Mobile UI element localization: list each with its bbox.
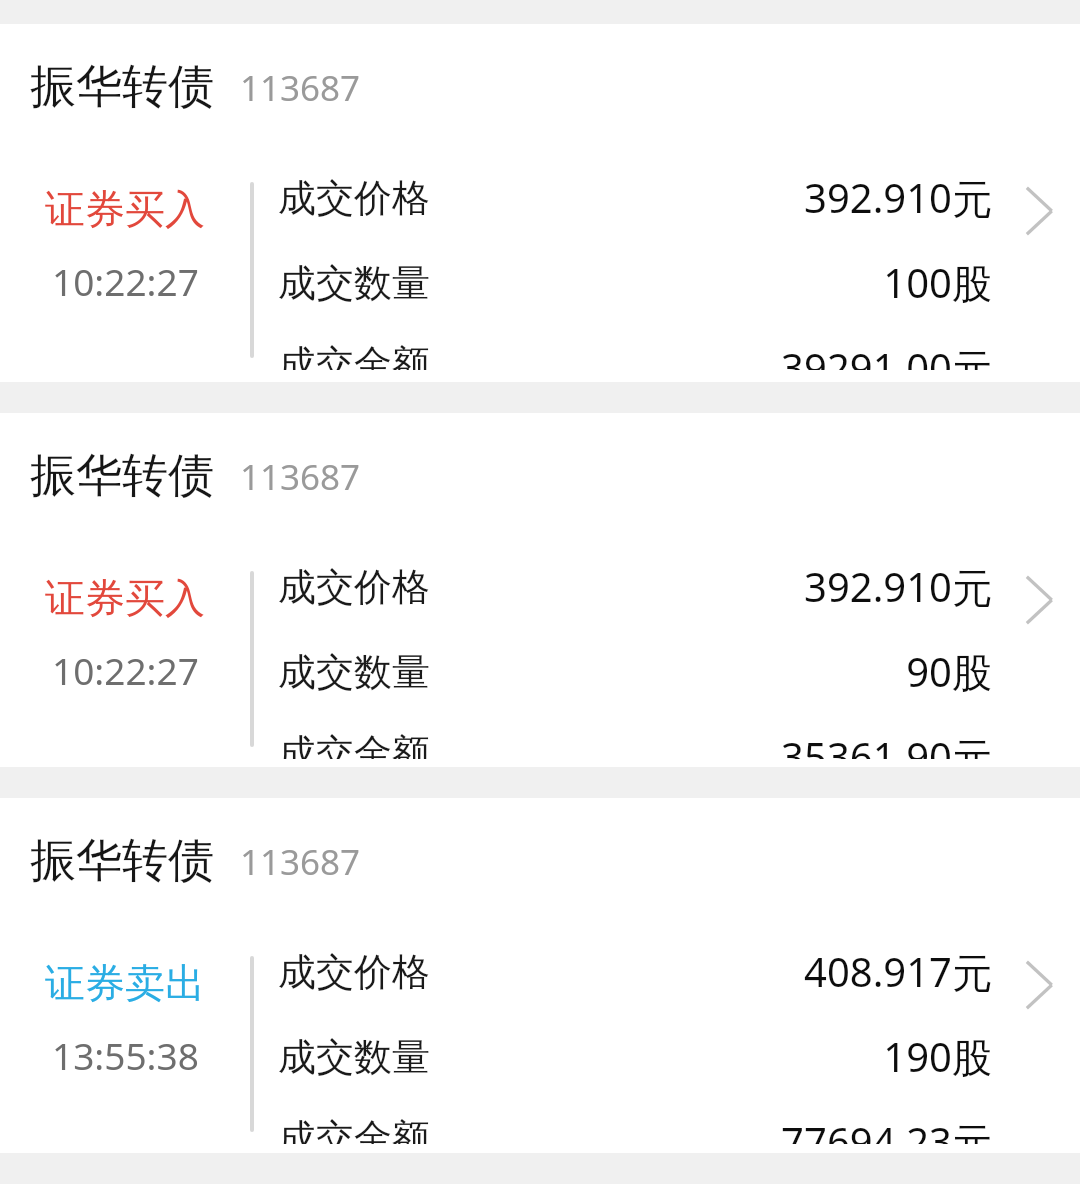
staticText: 392.910元: [804, 559, 992, 614]
button[interactable]: 振华转债: [0, 413, 1080, 767]
staticText: 成交数量: [278, 648, 430, 696]
staticText: 392.910元: [804, 170, 992, 225]
staticText: 证券买入: [45, 573, 205, 623]
staticText: 13:55:38: [52, 1030, 199, 1080]
staticText: 成交金额: [278, 729, 430, 759]
staticText: 77694.23元: [781, 1114, 992, 1144]
staticText: 113687: [240, 453, 361, 501]
staticText: 10:22:27: [52, 645, 199, 695]
staticText: 10:22:27: [52, 256, 199, 306]
staticText: 39291.00元: [781, 340, 992, 370]
staticText: 成交金额: [278, 1114, 430, 1144]
staticText: 100股: [883, 255, 992, 310]
staticText: 振华转债: [30, 447, 214, 505]
staticText: 35361.90元: [781, 729, 992, 759]
staticText: 成交金额: [278, 340, 430, 370]
staticText: 408.917元: [804, 944, 992, 999]
staticText: 成交价格: [278, 563, 430, 611]
button[interactable]: 查看详情: [1012, 184, 1066, 238]
staticText: 113687: [240, 838, 361, 886]
button[interactable]: 振华转债: [0, 24, 1080, 382]
staticText: 190股: [883, 1029, 992, 1084]
staticText: 成交数量: [278, 1033, 430, 1081]
button[interactable]: 查看详情: [1012, 958, 1066, 1012]
staticText: 振华转债: [30, 832, 214, 890]
staticText: 证券买入: [45, 184, 205, 234]
button[interactable]: 查看详情: [1012, 573, 1066, 627]
staticText: 成交价格: [278, 948, 430, 996]
staticText: 振华转债: [30, 58, 214, 116]
staticText: 113687: [240, 64, 361, 112]
staticText: 证券卖出: [45, 958, 205, 1008]
staticText: 90股: [906, 644, 992, 699]
button[interactable]: 振华转债: [0, 798, 1080, 1153]
staticText: 成交数量: [278, 259, 430, 307]
staticText: 成交价格: [278, 174, 430, 222]
